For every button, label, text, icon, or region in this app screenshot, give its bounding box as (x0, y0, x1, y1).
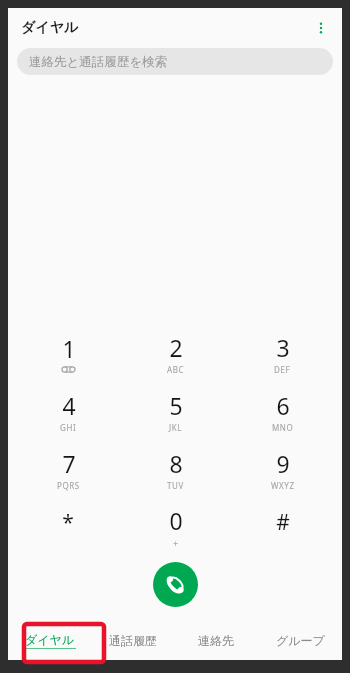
staticText: 5 (169, 390, 183, 421)
staticText: 6 (276, 390, 290, 421)
staticText: グループ (276, 633, 325, 648)
staticText: 1 (62, 333, 76, 364)
staticText: 3 (276, 332, 290, 363)
button[interactable]: 5 (122, 382, 229, 440)
staticText: WXYZ (271, 480, 295, 491)
staticText: 8 (169, 448, 183, 479)
staticText: MNO (272, 422, 294, 433)
staticText: 2 (169, 332, 183, 363)
staticText: 4 (62, 390, 76, 421)
staticText: JKL (169, 422, 183, 433)
button[interactable]: 7 (14, 440, 122, 498)
button[interactable]: * (14, 498, 122, 556)
button[interactable]: 9 (229, 440, 336, 498)
button[interactable]: # (229, 498, 336, 556)
staticText: PQRS (57, 480, 80, 491)
staticText: ダイヤル (21, 19, 79, 37)
button[interactable]: 3 (229, 324, 336, 382)
button[interactable]: 0 (122, 498, 229, 556)
staticText: 0 (169, 505, 183, 536)
staticText: ダイヤル (25, 632, 75, 647)
button[interactable]: ダイヤル (8, 620, 91, 660)
button[interactable]: 8 (122, 440, 229, 498)
button[interactable]: 連絡先と通話履歴を検索 (17, 48, 333, 75)
button[interactable]: グループ (258, 620, 342, 660)
staticText: 7 (62, 448, 76, 479)
staticText: GHI (60, 422, 77, 433)
staticText: DEF (274, 364, 291, 375)
button[interactable]: その他のオプション (306, 13, 336, 43)
button[interactable]: 1 (14, 324, 122, 382)
button[interactable]: 連絡先 (174, 620, 258, 660)
staticText: 連絡先と通話履歴を検索 (29, 54, 168, 70)
staticText: # (276, 508, 290, 537)
staticText: 連絡先 (198, 633, 234, 648)
staticText: ABC (167, 364, 185, 375)
staticText: + (173, 537, 179, 549)
button[interactable]: 6 (229, 382, 336, 440)
button[interactable]: 通話 (153, 562, 198, 607)
button[interactable]: 通話履歴 (91, 620, 174, 660)
staticText: 9 (276, 448, 290, 479)
staticText: 通話履歴 (109, 633, 157, 648)
button[interactable]: 2 (122, 324, 229, 382)
staticText: * (62, 508, 74, 537)
staticText: TUV (167, 480, 184, 491)
button[interactable]: 4 (14, 382, 122, 440)
